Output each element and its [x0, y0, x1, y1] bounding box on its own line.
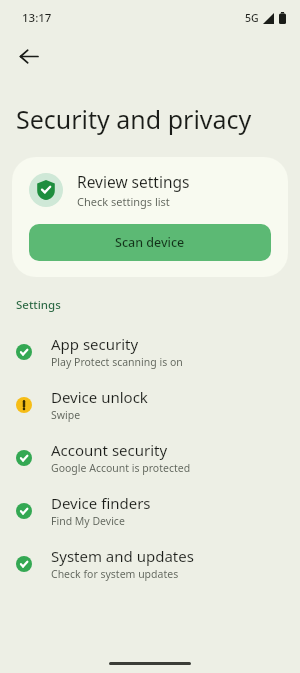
staticText: Scan device — [115, 234, 185, 251]
button[interactable]: Back — [8, 36, 48, 76]
button[interactable]: System and updates — [0, 537, 300, 590]
button[interactable]: Review settings — [12, 157, 288, 277]
staticText: Settings — [16, 297, 61, 313]
staticText: Check settings list — [77, 194, 170, 209]
staticText: Security and privacy — [16, 102, 252, 136]
staticText: Play Protect scanning is on — [51, 355, 183, 369]
staticText: System and updates — [51, 546, 194, 566]
button[interactable]: App security — [0, 325, 300, 378]
staticText: Review settings — [77, 171, 190, 192]
staticText: Device unlock — [51, 387, 148, 407]
button[interactable]: Device finders — [0, 484, 300, 537]
staticText: Account security — [51, 440, 168, 460]
staticText: App security — [51, 334, 139, 354]
staticText: Find My Device — [51, 514, 125, 528]
staticText: Swipe — [51, 408, 81, 422]
staticText: 13:17 — [22, 10, 52, 26]
staticText: Google Account is protected — [51, 461, 191, 475]
staticText: Device finders — [51, 493, 151, 513]
button[interactable]: Account security — [0, 431, 300, 484]
staticText: 5G — [245, 11, 259, 25]
button[interactable]: Device unlock — [0, 378, 300, 431]
staticText: Check for system updates — [51, 567, 179, 581]
button[interactable]: Scan device — [29, 224, 271, 261]
